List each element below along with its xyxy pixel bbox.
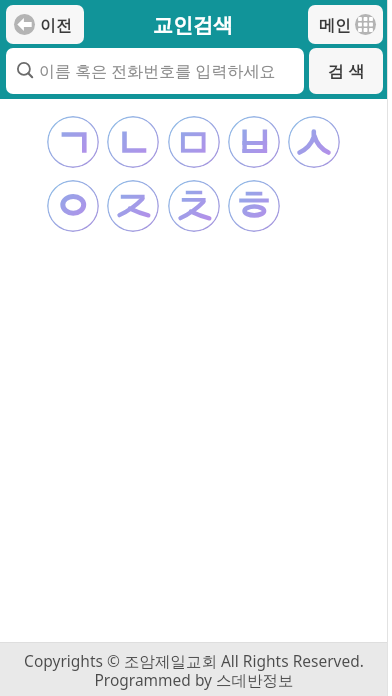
button[interactable]: m [168,116,220,168]
staticText: 이름 혹은 전화번호를 입력하세요 [39,60,276,82]
button[interactable]: 이전 [6,5,84,44]
button[interactable]: b [228,116,280,168]
button[interactable]: g [47,116,99,168]
button[interactable]: n [107,116,159,168]
staticText: 검 색 [328,60,365,82]
staticText: Programmed by 스데반정보 [94,669,294,690]
button[interactable]: 메인 [308,5,383,44]
button[interactable]: j [107,180,159,232]
button[interactable]: 이름 혹은 전화번호를 입력하세요 [6,48,304,94]
button[interactable]: h [228,180,280,232]
staticText: Copyrights © 조암제일교회 All Rights Reserved. [24,650,364,671]
button[interactable]: c [168,180,220,232]
button[interactable]: 검 색 [309,48,383,94]
button[interactable]: o [47,180,99,232]
staticText: 교인검색 [153,13,233,38]
staticText: 이전 [40,16,72,36]
staticText: 메인 [319,16,351,36]
button[interactable]: s [288,116,340,168]
